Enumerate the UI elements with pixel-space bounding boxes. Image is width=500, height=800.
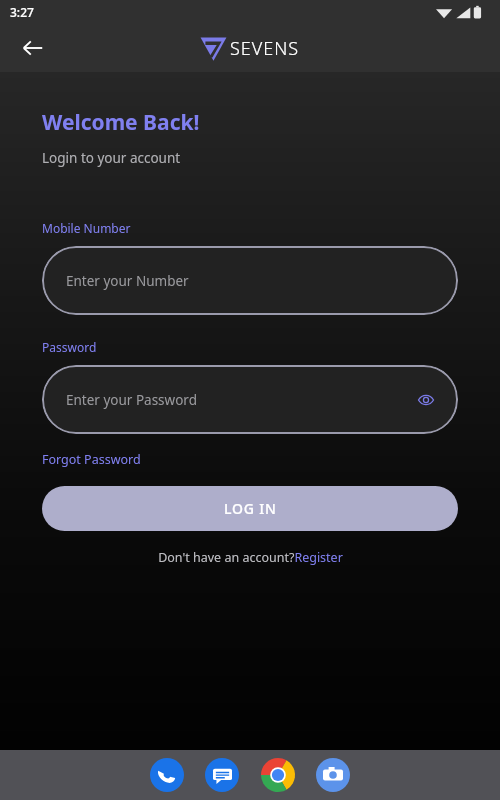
staticText: Mobile Number [42,220,131,236]
staticText: Enter your Password [66,391,197,409]
staticText: Forgot Password [42,451,141,468]
button[interactable]: Messages [205,758,239,792]
button[interactable]: Back [22,37,44,59]
button[interactable]: Enter your Number [42,246,458,315]
button[interactable]: Camera [316,758,350,792]
button[interactable]: Forgot Password [42,451,141,468]
staticText: Login to your account [42,149,181,167]
staticText: Welcome Back! [42,108,200,137]
staticText: Don't have an account?Register [158,549,343,566]
staticText: 3:27 [10,4,34,20]
staticText: Enter your Number [66,272,189,290]
button[interactable]: Chrome [261,758,295,792]
button[interactable]: LOG IN [42,486,458,531]
staticText: LOG IN [224,499,277,518]
button[interactable]: Enter your Password [42,365,458,434]
staticText: SEVENS [230,36,300,61]
staticText: Password [42,339,97,355]
button[interactable]: Phone [150,758,184,792]
button[interactable]: Don't have an account?Register [158,549,343,566]
